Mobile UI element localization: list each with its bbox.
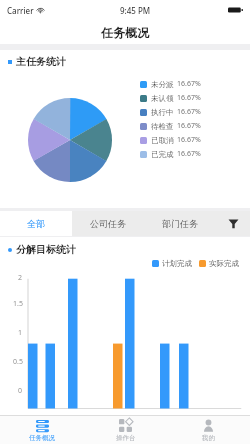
button[interactable]: 操作台 xyxy=(84,416,167,444)
staticText: 16.67% xyxy=(177,149,201,159)
staticText: 待检查 xyxy=(151,122,174,131)
staticText: 计划完成 xyxy=(162,259,192,268)
button[interactable]: 我的 xyxy=(167,416,250,444)
staticText: 16.67% xyxy=(177,93,201,103)
button[interactable]: 公司任务 xyxy=(72,211,144,236)
staticText: 实际完成 xyxy=(209,259,239,268)
staticText: 0.5 xyxy=(13,357,23,367)
staticText: 部门任务 xyxy=(162,218,198,229)
staticText: 主任务统计 xyxy=(16,55,66,68)
button[interactable]: Filter xyxy=(216,211,250,236)
staticText: 16.67% xyxy=(177,121,201,131)
button[interactable]: 部门任务 xyxy=(144,211,216,236)
staticText: 16.67% xyxy=(177,135,201,145)
staticText: 任务概况 xyxy=(29,434,55,442)
staticText: 16.67% xyxy=(177,79,201,89)
staticText: 任务概况 xyxy=(101,25,149,40)
staticText: 16.67% xyxy=(177,107,201,117)
staticText: 我的 xyxy=(202,434,215,442)
staticText: 1.5 xyxy=(13,299,23,309)
staticText: 1 xyxy=(18,328,23,338)
staticText: 已完成 xyxy=(151,150,174,159)
staticText: 未分派 xyxy=(151,80,174,89)
button[interactable]: 任务概况 xyxy=(0,416,84,444)
staticText: 已取消 xyxy=(151,136,174,145)
staticText: 9:45 PM xyxy=(120,5,151,16)
staticText: 公司任务 xyxy=(90,218,126,229)
staticText: 2 xyxy=(18,273,23,283)
staticText: 操作台 xyxy=(116,434,136,442)
staticText: 全部 xyxy=(27,218,45,229)
staticText: 未认领 xyxy=(151,94,174,103)
staticText: 分解目标统计 xyxy=(16,243,76,256)
staticText: Carrier xyxy=(7,5,34,16)
staticText: 执行中 xyxy=(151,108,174,117)
button[interactable]: 全部 xyxy=(0,211,72,236)
staticText: 0 xyxy=(18,386,23,396)
